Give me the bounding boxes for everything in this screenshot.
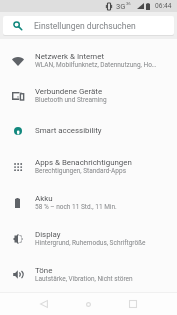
button[interactable]: Recents <box>122 293 144 315</box>
staticText: Apps & Benachrichtigungen <box>35 158 132 167</box>
staticText: 3G <box>116 2 126 11</box>
button[interactable]: Home <box>77 293 99 315</box>
staticText: 36 <box>126 1 131 6</box>
staticText: Netzwerk & Internet <box>35 52 104 61</box>
staticText: 06:44 <box>155 2 172 10</box>
staticText: Akku <box>35 194 53 203</box>
button[interactable]: Display <box>0 221 177 256</box>
staticText: Einstellungen durchsuchen <box>34 21 136 31</box>
staticText: Töne <box>35 266 53 275</box>
staticText: WLAN, Mobilfunknetz, Datennutzung, Ho… <box>35 61 157 69</box>
staticText: Berechtigungen, Standard-Apps <box>35 167 126 175</box>
staticText: Hintergrund, Ruhemodus, Schriftgröße <box>35 239 146 247</box>
staticText: Verbundene Geräte <box>35 87 103 96</box>
button[interactable]: Töne <box>0 257 177 292</box>
button[interactable]: Einstellungen durchsuchen <box>3 16 174 35</box>
button[interactable]: Netzwerk & Internet <box>0 43 177 78</box>
button[interactable]: Smart accessibility <box>0 113 177 147</box>
staticText: Lautstärke, Vibration, Nicht stören <box>35 275 133 283</box>
staticText: 58 % – noch 11 Std., 11 Min. <box>35 203 117 211</box>
staticText: Smart accessibility <box>35 126 102 135</box>
button[interactable]: Verbundene Geräte <box>0 78 177 113</box>
staticText: Display <box>35 230 61 239</box>
button[interactable]: Akku <box>0 185 177 220</box>
button[interactable]: Back <box>33 293 55 315</box>
staticText: Bluetooth und Streaming <box>35 96 107 104</box>
button[interactable]: Apps & Benachrichtigungen <box>0 149 177 184</box>
